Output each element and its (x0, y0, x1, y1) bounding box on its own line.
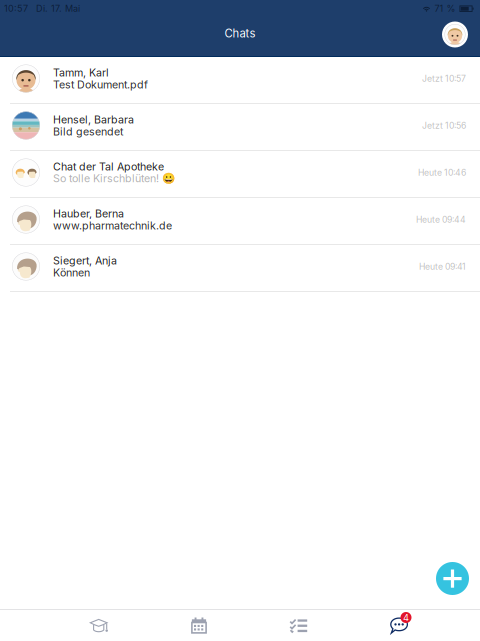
button[interactable]: Tamm, Karl (0, 57, 480, 104)
staticText: Di. 17. Mai (36, 3, 80, 14)
staticText: Jetzt 10:57 (422, 73, 466, 84)
staticText: Jetzt 10:56 (422, 120, 466, 131)
button[interactable]: Neuer Chat (436, 562, 469, 595)
button[interactable]: Profil (442, 23, 468, 49)
staticText: Chats (224, 27, 255, 40)
staticText: Heute 10:46 (418, 167, 466, 178)
button[interactable]: Kalender (149, 610, 249, 641)
staticText: Heute 09:41 (419, 261, 466, 272)
staticText: 10:57 (4, 3, 28, 14)
staticText: www.pharmatechnik.de (53, 219, 172, 232)
staticText: 71 % (434, 3, 455, 14)
button[interactable]: Schulungen (49, 610, 149, 641)
staticText: Siegert, Anja (53, 254, 117, 267)
staticText: Bild gesendet (53, 125, 123, 138)
button[interactable]: Siegert, Anja (0, 245, 480, 292)
staticText: Test Dokument.pdf (53, 78, 148, 91)
staticText: So tolle Kirschblüten! 😀 (53, 172, 175, 185)
staticText: Chat der Tal Apotheke (53, 160, 164, 173)
staticText: 4 (403, 612, 409, 623)
staticText: Tamm, Karl (53, 66, 109, 79)
button[interactable]: Chat der Tal Apotheke (0, 151, 480, 198)
staticText: Hensel, Barbara (53, 113, 134, 126)
button[interactable]: Hauber, Berna (0, 198, 480, 245)
button[interactable]: Hensel, Barbara (0, 104, 480, 151)
staticText: Hauber, Berna (53, 207, 124, 220)
button[interactable]: Chats (349, 610, 449, 641)
staticText: Heute 09:44 (416, 214, 466, 225)
staticText: Können (53, 266, 90, 279)
button[interactable]: Aufgaben (249, 610, 349, 641)
